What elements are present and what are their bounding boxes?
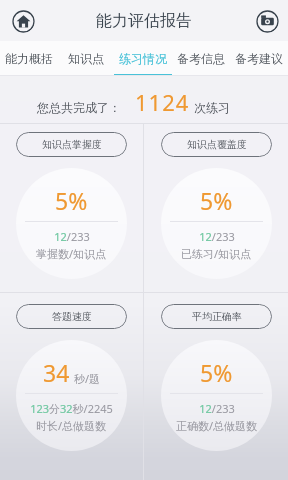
staticText: 答题速度: [52, 310, 92, 323]
staticText: 12/233: [199, 401, 235, 416]
button[interactable]: Camera: [255, 9, 279, 33]
staticText: 5%: [55, 185, 88, 216]
staticText: 次练习: [194, 100, 230, 115]
button[interactable]: Home: [11, 9, 35, 33]
staticText: 正确数/总做题数: [176, 418, 258, 433]
button[interactable]: 答题速度: [0, 293, 143, 480]
button[interactable]: 备考信息: [172, 41, 230, 76]
staticText: 123分32秒/2245: [30, 401, 113, 416]
staticText: 12/233: [54, 229, 90, 244]
staticText: 12/233: [199, 229, 235, 244]
staticText: 1124: [135, 87, 190, 117]
staticText: 34: [43, 357, 70, 388]
staticText: 平均正确率: [192, 310, 242, 323]
button[interactable]: 平均正确率: [144, 293, 288, 480]
staticText: 5%: [200, 185, 233, 216]
button[interactable]: 知识点: [57, 41, 114, 76]
staticText: 能力评估报告: [96, 11, 192, 31]
staticText: 掌握数/知识点: [36, 246, 107, 261]
staticText: 5%: [200, 357, 233, 388]
button[interactable]: 知识点覆盖度: [144, 124, 288, 292]
staticText: 秒/题: [74, 371, 101, 386]
staticText: 练习情况: [119, 51, 167, 66]
staticText: 您总共完成了：: [37, 100, 121, 115]
button[interactable]: 能力概括: [0, 41, 57, 76]
staticText: 时长/总做题数: [36, 418, 107, 433]
button[interactable]: 知识点掌握度: [0, 124, 143, 292]
button[interactable]: 练习情况: [114, 41, 172, 76]
button[interactable]: 备考建议: [230, 41, 288, 76]
staticText: 能力概括: [5, 51, 53, 66]
staticText: 知识点覆盖度: [187, 138, 247, 151]
staticText: 备考建议: [235, 51, 283, 66]
staticText: 知识点: [68, 51, 104, 66]
staticText: 备考信息: [177, 51, 225, 66]
staticText: 知识点掌握度: [42, 138, 102, 151]
staticText: 已练习/知识点: [181, 246, 252, 261]
